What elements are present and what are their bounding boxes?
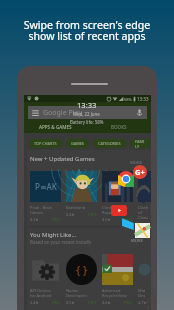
staticText: 13:33 xyxy=(137,96,149,102)
staticText: Wed, 22 June xyxy=(73,111,100,117)
staticText: Mat Des xyxy=(138,288,146,298)
staticText: 4.7★ xyxy=(138,300,147,305)
staticText: You Might Like... xyxy=(30,231,77,239)
staticText: Advanced RecyclerView xyxy=(102,288,127,298)
button[interactable]: APPS & GAMES xyxy=(24,121,87,133)
button[interactable]: GAMES xyxy=(71,139,84,148)
staticText: MORE xyxy=(131,238,144,244)
staticText: CATEGORIES xyxy=(98,141,121,146)
staticText: 13:33 xyxy=(77,100,97,110)
staticText: FREE xyxy=(52,300,61,305)
button[interactable]: { } xyxy=(66,254,97,305)
button[interactable]: Advanced RecyclerView xyxy=(102,254,133,305)
staticText: Peak - Brain Games xyxy=(30,205,53,215)
button[interactable]: Chrome xyxy=(118,171,134,187)
button[interactable]: TOP CHARTS xyxy=(34,139,57,148)
button[interactable]: Battleland xyxy=(66,171,97,217)
staticText: 4.3★ xyxy=(30,217,39,222)
staticText: Swipe from screen's edge show list of re… xyxy=(4,18,170,43)
button[interactable]: Drive xyxy=(121,217,136,232)
staticText: Clash Royale xyxy=(102,205,115,215)
staticText: New + Updated Games xyxy=(30,155,95,163)
staticText: G+ xyxy=(135,167,145,177)
button[interactable]: FAMILY xyxy=(135,139,146,148)
staticText: API Demos for Android xyxy=(30,288,52,298)
button[interactable]: Mat Des xyxy=(138,254,151,310)
button[interactable]: API Demos for Android xyxy=(30,254,61,305)
staticText: APPS & GAMES xyxy=(39,124,72,130)
staticText: FREE xyxy=(147,300,151,310)
staticText: 4.5★ xyxy=(102,217,111,222)
staticText: Google Play xyxy=(43,108,82,118)
staticText: GAMES xyxy=(71,141,84,146)
button[interactable]: Clash of Clans xyxy=(138,171,151,225)
button[interactable]: Maps xyxy=(135,223,150,238)
staticText: Based on your recent installs xyxy=(30,239,91,245)
button[interactable]: Clash Royale xyxy=(102,171,133,222)
staticText: 4.5★ xyxy=(66,300,75,305)
staticText: FREE xyxy=(124,217,133,222)
button[interactable]: YouTube xyxy=(111,205,127,216)
staticText: P≡AK xyxy=(35,181,57,192)
staticText: FREE xyxy=(52,217,61,222)
staticText: FREE xyxy=(124,300,133,305)
button[interactable]: Open navigation menu xyxy=(28,106,147,119)
staticText: Battery life: 58% xyxy=(70,119,104,125)
staticText: Numix Developers xyxy=(66,288,88,298)
button[interactable]: CATEGORIES xyxy=(98,139,121,148)
button[interactable]: P≡AK xyxy=(30,171,61,222)
staticText: FREE xyxy=(147,222,151,225)
staticText: 58% xyxy=(124,97,132,102)
staticText: BOOKS xyxy=(111,124,127,130)
button[interactable]: Google Plus xyxy=(133,165,147,179)
staticText: Clash of Clans xyxy=(138,205,151,220)
staticText: Battleland xyxy=(66,205,86,210)
staticText: 4.4★ xyxy=(66,212,75,217)
staticText: { } xyxy=(76,262,88,277)
staticText: FAMILY xyxy=(135,139,146,148)
other: Voice search xyxy=(135,108,144,117)
staticText: 4.6★ xyxy=(138,222,147,225)
staticText: 4.4★ xyxy=(30,300,39,305)
staticText: MORE xyxy=(130,160,143,166)
other: Open navigation menu xyxy=(31,108,40,117)
button[interactable]: BOOKS xyxy=(87,121,151,133)
staticText: FREE xyxy=(88,212,97,217)
staticText: 4.6★ xyxy=(102,300,111,305)
staticText: FREE xyxy=(88,300,97,305)
staticText: TOP CHARTS xyxy=(34,141,57,146)
